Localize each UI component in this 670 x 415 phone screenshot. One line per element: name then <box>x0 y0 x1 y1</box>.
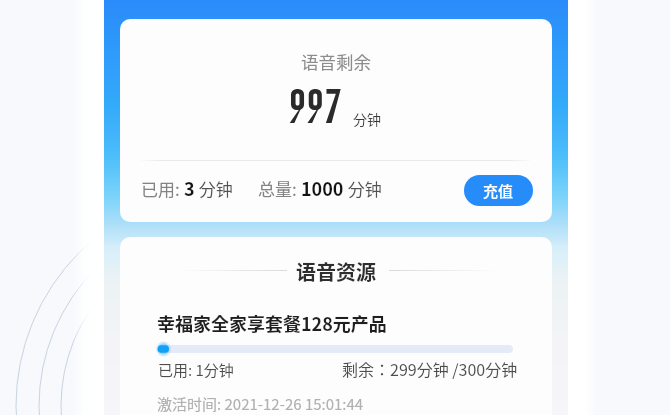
staticText: 已用: 1分钟 <box>158 359 234 381</box>
staticText: 语音资源 <box>120 257 552 286</box>
button[interactable]: 充值 <box>464 175 533 206</box>
staticText: 分钟 <box>195 176 233 201</box>
staticText: 激活时间: 2021-12-26 15:01:44 <box>157 393 364 415</box>
staticText: 剩余：299分钟 /300分钟 <box>342 357 518 380</box>
staticText: 3 <box>184 175 195 201</box>
staticText: 语音剩余 <box>120 49 552 74</box>
staticText: 已用: <box>141 176 184 201</box>
staticText: 1000 <box>301 175 344 201</box>
staticText: 分钟 <box>344 176 382 201</box>
staticText: 充值 <box>483 180 514 202</box>
staticText: 幸福家全家享套餐128元产品 <box>157 310 387 336</box>
staticText: 分钟 <box>353 109 381 129</box>
staticText: 总量: <box>258 176 301 201</box>
